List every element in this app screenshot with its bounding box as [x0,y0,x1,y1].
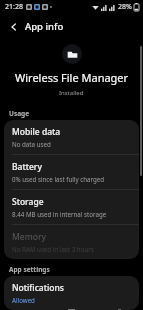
staticText: Allowed [12,296,35,304]
staticText: Usage [9,109,30,118]
staticText: Storage [12,196,44,208]
staticText: No RAM used in last 3 hours [12,245,94,253]
staticText: 8.44 MB used in internal storage [12,210,107,218]
button[interactable]: Mobile data [4,120,139,154]
staticText: Mobile data [12,126,61,138]
staticText: No data used [12,140,51,148]
button[interactable]: Back [6,19,22,35]
staticText: App info [25,20,64,33]
staticText: App settings [9,265,50,274]
staticText: Notifications [12,282,64,294]
staticText: Battery [12,161,42,173]
staticText: 21:28 [5,2,23,12]
staticText: 0% used since last fully charged [12,175,105,183]
button[interactable]: Storage [4,190,139,224]
staticText: Installed [59,89,84,97]
button[interactable]: Memory [4,225,139,259]
button[interactable]: Battery [4,155,139,189]
staticText: Wireless File Manager [15,70,129,85]
staticText: Memory [12,231,47,243]
button[interactable]: Notifications [4,276,139,310]
staticText: 28% [118,2,132,12]
